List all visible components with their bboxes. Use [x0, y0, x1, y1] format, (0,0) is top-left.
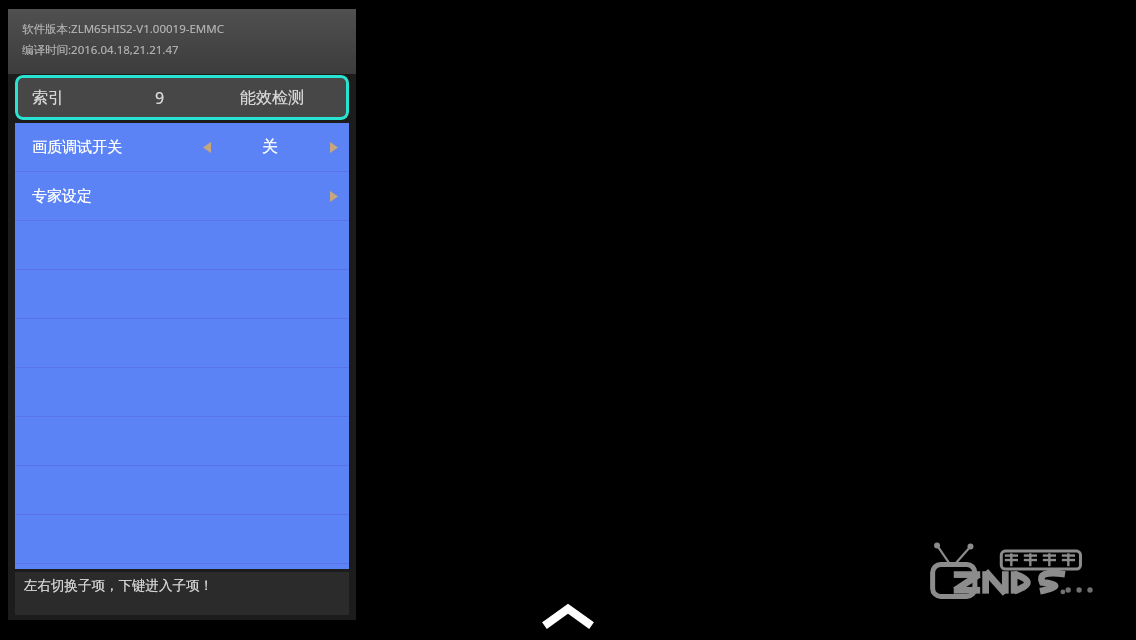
button[interactable]: Scroll up — [540, 599, 596, 633]
staticText: 能效检测 — [240, 88, 304, 108]
button[interactable]: 索引 — [15, 75, 349, 120]
staticText: 画质调试开关 — [32, 138, 122, 157]
staticText: 软件版本:ZLM65HIS2-V1.00019-EMMC — [22, 21, 224, 37]
button[interactable]: 专家设定 — [15, 172, 349, 220]
staticText: 专家设定 — [32, 187, 92, 206]
staticText: 关 — [262, 137, 278, 157]
staticText: 索引 — [32, 88, 64, 108]
staticText: 9 — [155, 87, 165, 109]
staticText: 编译时间:2016.04.18,21.21.47 — [22, 42, 179, 58]
button[interactable]: 画质调试开关 — [15, 123, 349, 171]
staticText: 左右切换子项，下键进入子项！ — [24, 577, 213, 594]
